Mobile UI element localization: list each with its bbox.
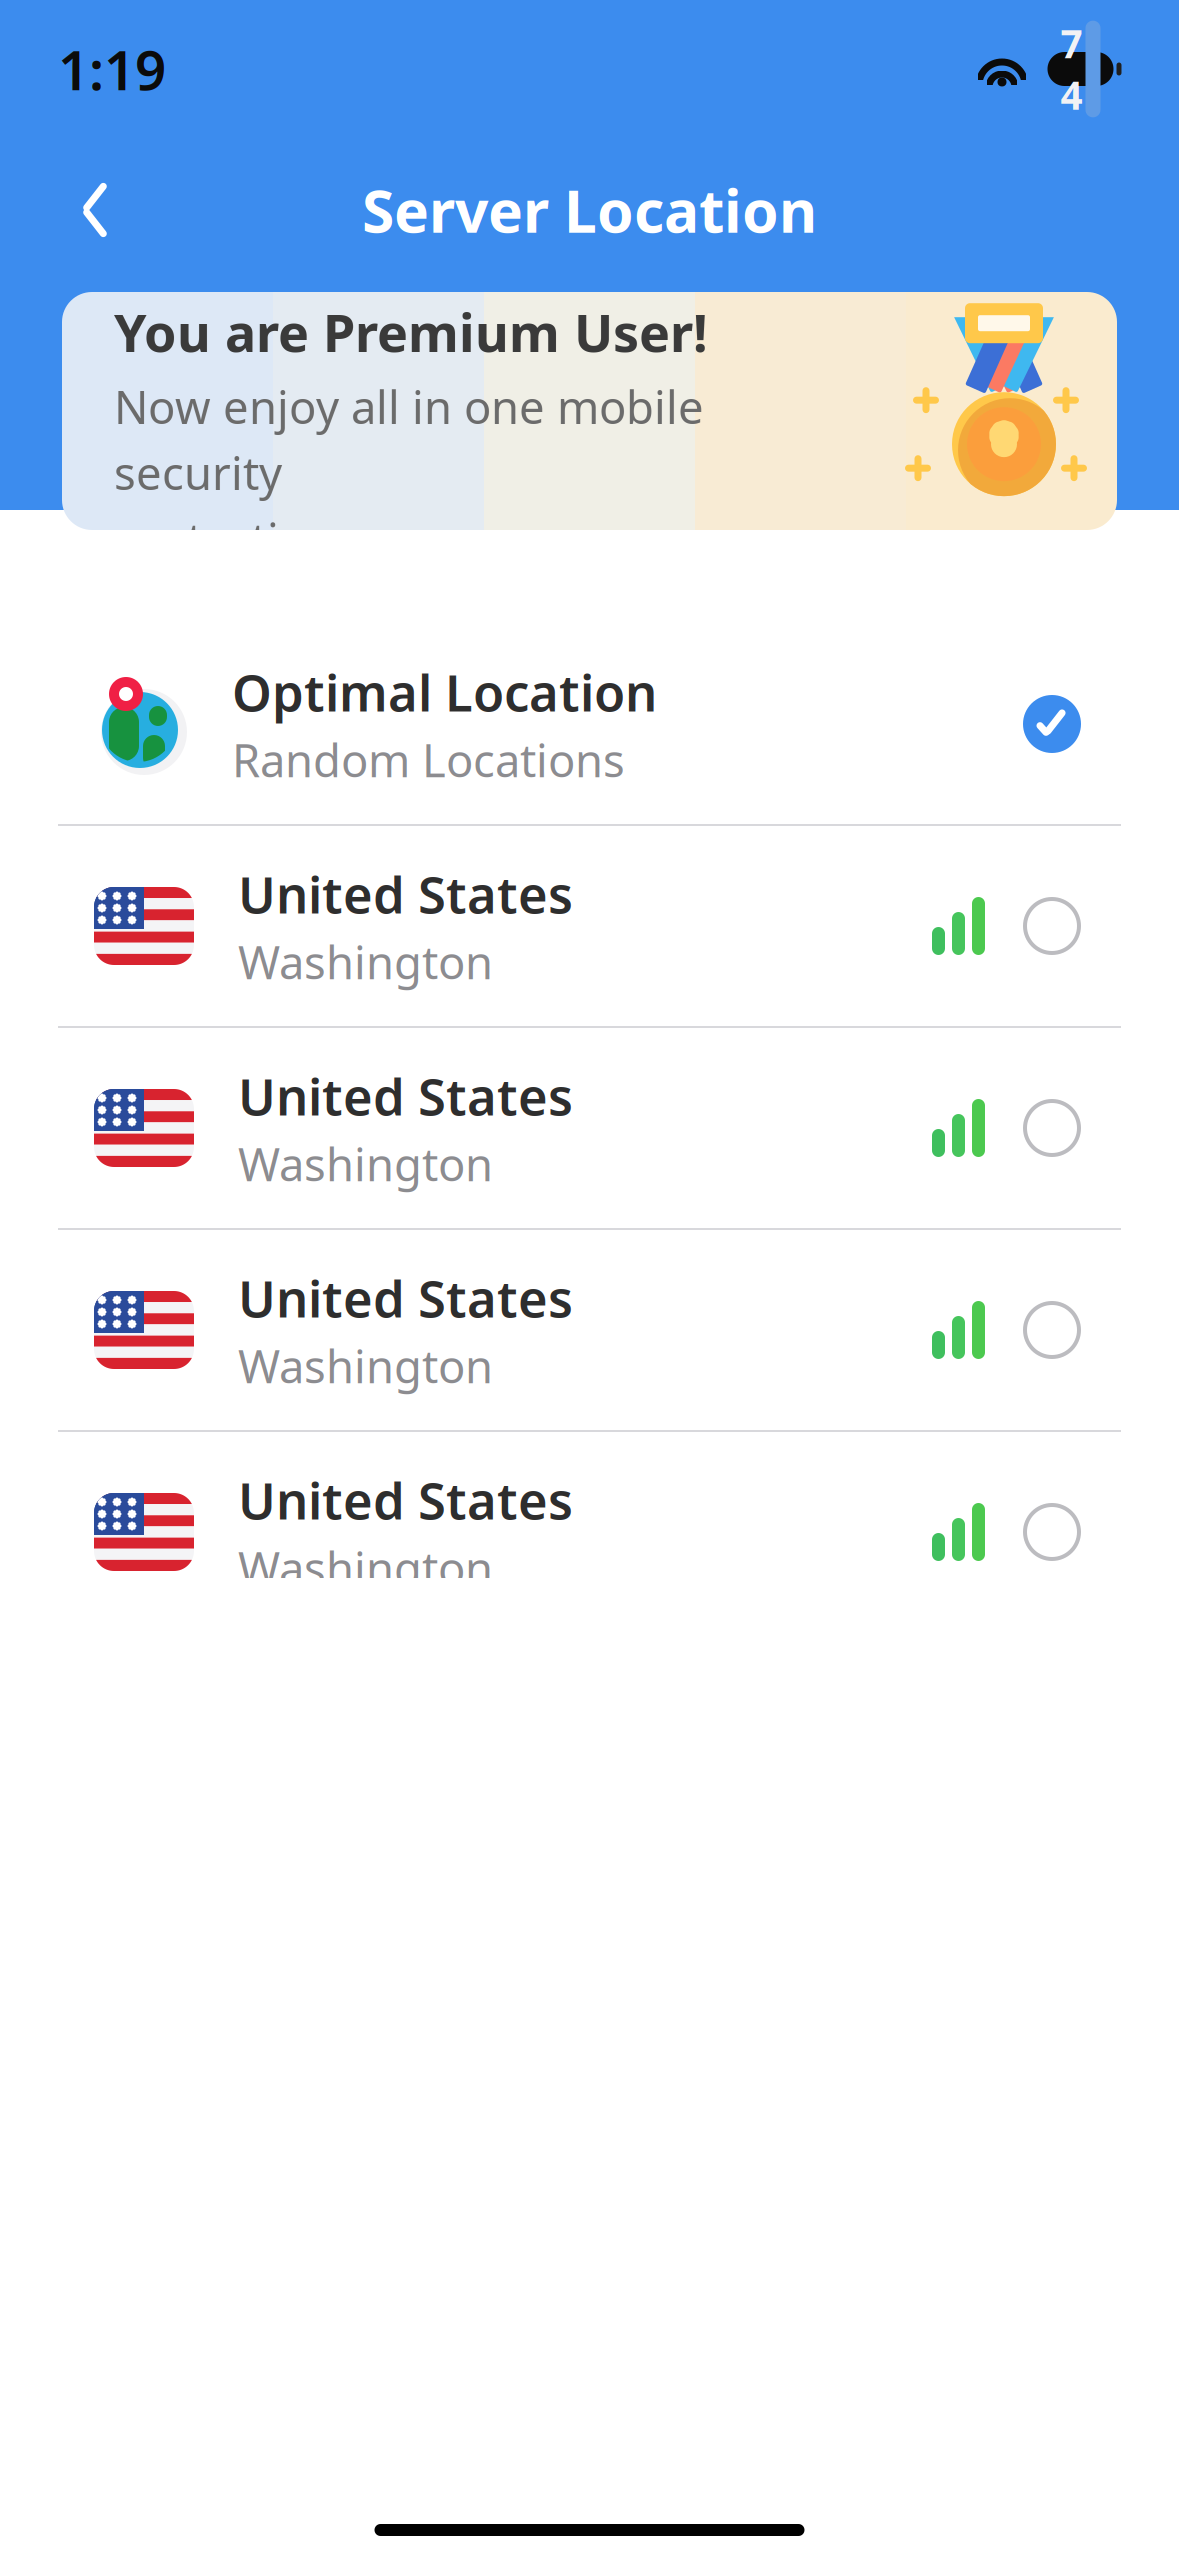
button[interactable]: United States xyxy=(0,1432,1179,1632)
staticText: United States xyxy=(238,1264,573,1332)
staticText: Server Location xyxy=(362,171,817,249)
staticText: Washington xyxy=(238,1537,493,1598)
staticText: Washington xyxy=(238,931,493,992)
button[interactable]: Optimal Location xyxy=(0,624,1179,824)
button[interactable]: United States xyxy=(0,1230,1179,1430)
staticText: United States xyxy=(238,1062,573,1130)
button[interactable]: United States xyxy=(0,826,1179,1026)
staticText: 74 xyxy=(1060,18,1082,120)
button[interactable]: United States xyxy=(0,1028,1179,1228)
staticText: Optimal Location xyxy=(232,658,657,726)
button[interactable]: Back xyxy=(52,163,138,257)
staticText: Now enjoy all in one mobile security pro… xyxy=(114,376,704,569)
staticText: United States xyxy=(238,860,573,928)
staticText: Random Locations xyxy=(232,729,625,790)
staticText: United States xyxy=(238,1466,573,1534)
staticText: You are Premium User! xyxy=(114,297,708,366)
staticText: 1:19 xyxy=(58,33,166,105)
staticText: Washington xyxy=(238,1335,493,1396)
staticText: Washington xyxy=(238,1133,493,1194)
